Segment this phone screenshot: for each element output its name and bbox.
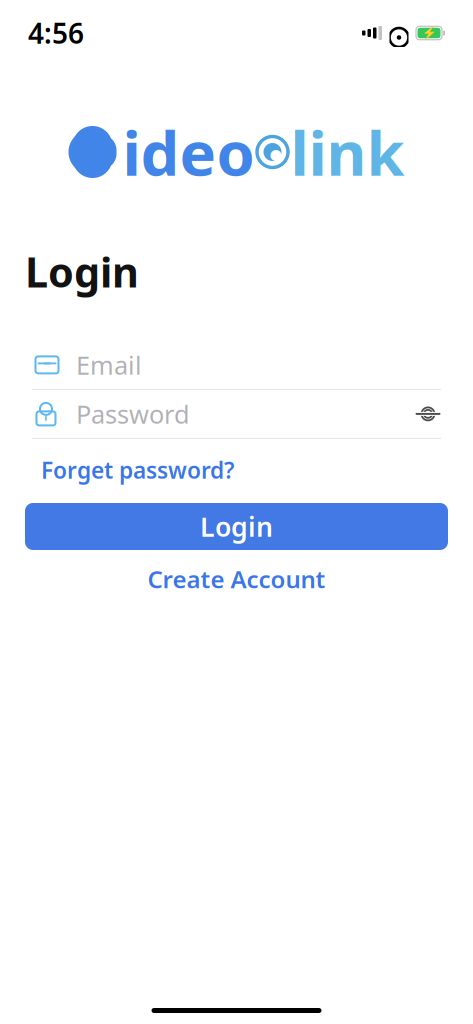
button[interactable]: Login <box>25 503 448 550</box>
staticText: 4:56 <box>28 14 84 52</box>
button[interactable]: Show password <box>411 397 445 431</box>
staticText: Email <box>76 348 142 382</box>
staticText: Login <box>200 509 273 544</box>
button[interactable]: Create Account <box>25 562 448 596</box>
staticText: Forget password? <box>41 455 234 485</box>
staticText: link <box>290 111 404 193</box>
staticText: Create Account <box>147 563 325 595</box>
staticText: ⚡ <box>421 26 436 40</box>
staticText: Login <box>25 244 139 299</box>
button[interactable]: Forget password? <box>41 455 234 485</box>
staticText: ideo <box>122 111 254 193</box>
staticText: Password <box>76 397 190 431</box>
